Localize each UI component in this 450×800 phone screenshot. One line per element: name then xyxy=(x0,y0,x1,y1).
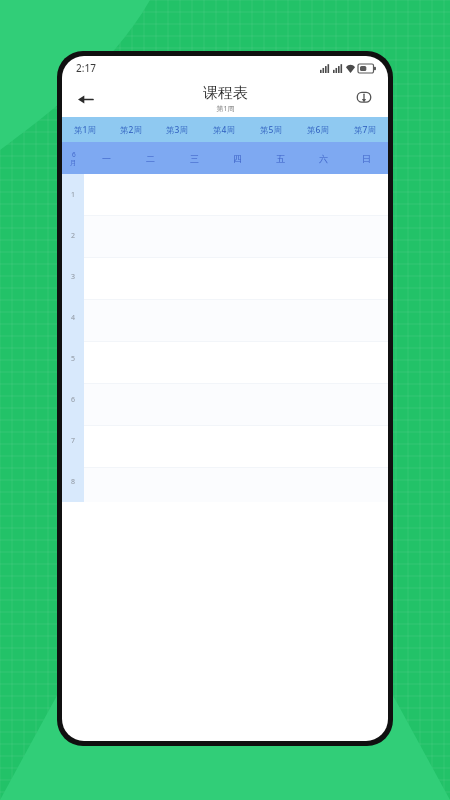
button[interactable]: 六 xyxy=(302,142,345,174)
button[interactable]: 四 xyxy=(216,142,259,174)
staticText: 3 xyxy=(71,272,76,282)
staticText: 一 xyxy=(102,153,111,164)
staticText: 日 xyxy=(362,153,371,164)
button[interactable]: 第1周 xyxy=(62,117,108,142)
button[interactable]: 第6周 xyxy=(294,117,341,142)
staticText: 三 xyxy=(190,153,199,164)
button[interactable]: 二 xyxy=(128,142,172,174)
staticText: 第3周 xyxy=(166,124,188,136)
staticText: 第1周 xyxy=(74,124,96,136)
button[interactable]: 第5周 xyxy=(247,117,294,142)
staticText: 5 xyxy=(71,354,76,364)
staticText: 2:17 xyxy=(76,61,96,75)
staticText: 第1周 xyxy=(216,104,235,114)
button[interactable]: 第2周 xyxy=(108,117,154,142)
staticText: 五 xyxy=(276,153,285,164)
staticText: 第5周 xyxy=(260,124,282,136)
staticText: 6 xyxy=(72,150,76,159)
staticText: 1 xyxy=(71,190,76,200)
button[interactable]: Import schedule xyxy=(348,83,380,115)
staticText: 四 xyxy=(233,153,242,164)
staticText: 第6周 xyxy=(307,124,329,136)
staticText: 第7周 xyxy=(354,124,376,136)
button[interactable]: 第3周 xyxy=(154,117,200,142)
staticText: 7 xyxy=(71,436,76,446)
staticText: 课程表 xyxy=(203,84,248,103)
button[interactable]: 第7周 xyxy=(341,117,388,142)
staticText: 六 xyxy=(319,153,328,164)
staticText: 4 xyxy=(71,313,76,323)
button[interactable]: 五 xyxy=(259,142,302,174)
button[interactable]: 一 xyxy=(84,142,128,174)
button[interactable]: 三 xyxy=(172,142,216,174)
staticText: 2 xyxy=(71,231,76,241)
staticText: 第4周 xyxy=(213,124,235,136)
button[interactable]: 日 xyxy=(345,142,388,174)
staticText: 第2周 xyxy=(120,124,142,136)
staticText: 6 xyxy=(71,395,76,405)
staticText: 月 xyxy=(70,159,77,167)
staticText: 8 xyxy=(71,477,76,487)
button[interactable]: 第4周 xyxy=(200,117,247,142)
staticText: 二 xyxy=(146,153,155,164)
button[interactable]: Back xyxy=(68,82,102,116)
